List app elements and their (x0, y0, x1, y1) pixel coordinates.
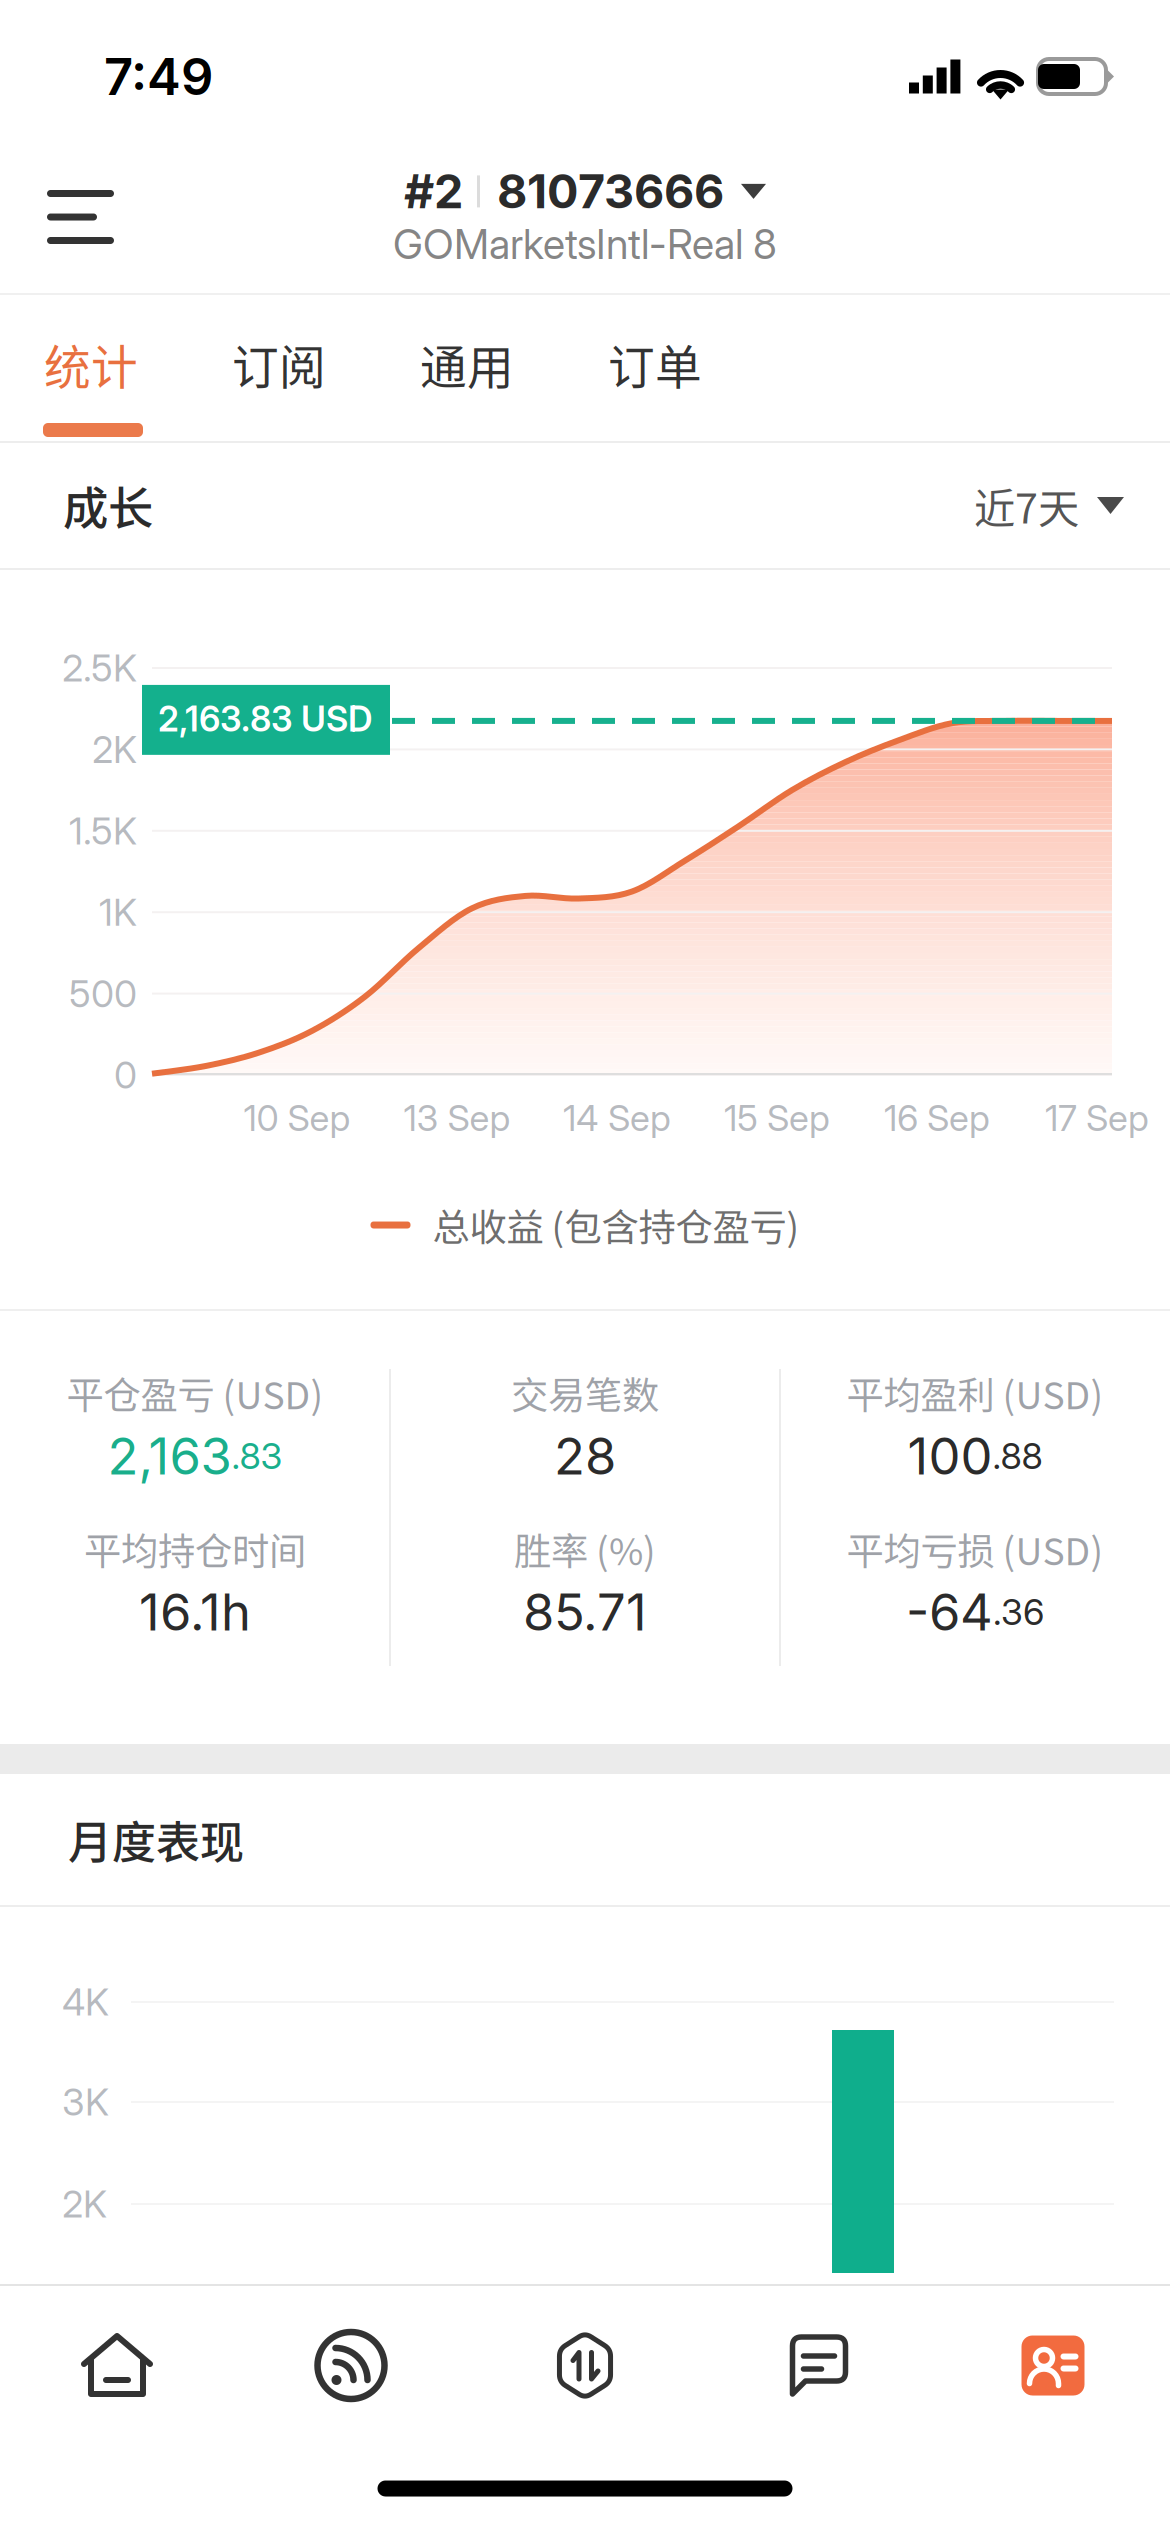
staticText: 订阅 (232, 330, 326, 398)
staticText: 4K (62, 1979, 109, 2025)
staticText: 近7天 (974, 476, 1079, 535)
staticText: 7:49 (104, 46, 213, 107)
staticText: 100 (907, 1425, 992, 1487)
staticText: 15 Sep (724, 1096, 830, 1140)
button[interactable]: 通用 (415, 295, 603, 441)
staticText: 2.5K (62, 645, 137, 691)
staticText: .83 (231, 1434, 282, 1478)
staticText: -64 (906, 1581, 993, 1643)
button[interactable]: Profile (936, 2286, 1170, 2445)
staticText: 81073666 (497, 163, 724, 220)
staticText: 10 Sep (243, 1096, 350, 1140)
button[interactable]: Trade (468, 2286, 702, 2445)
staticText: 17 Sep (1045, 1096, 1149, 1140)
staticText: 平均亏损 (USD) (846, 1522, 1103, 1576)
staticText: 平仓盈亏 (USD) (66, 1366, 323, 1420)
staticText: 16.1h (139, 1581, 251, 1643)
staticText: 500 (69, 971, 137, 1016)
staticText: 16 Sep (884, 1096, 990, 1140)
staticText: 交易笔数 (511, 1366, 659, 1420)
staticText: 订单 (608, 330, 702, 398)
button[interactable]: 近7天 (944, 460, 1124, 551)
staticText: 3K (62, 2079, 109, 2125)
button[interactable]: 统计 (39, 295, 227, 441)
staticText: 月度表现 (68, 1808, 244, 1871)
button[interactable]: 订阅 (227, 295, 415, 441)
staticText: .36 (993, 1590, 1044, 1634)
staticText: 2,163 (107, 1425, 231, 1487)
staticText: 平均持仓时间 (84, 1522, 306, 1576)
staticText: 统计 (44, 330, 138, 398)
staticText: 2,163.83 USD (158, 698, 372, 740)
staticText: 13 Sep (403, 1096, 510, 1140)
staticText: 成长 (63, 473, 153, 538)
staticText: 2K (92, 727, 137, 772)
button[interactable]: 订单 (603, 295, 791, 441)
staticText: 1K (99, 890, 137, 935)
button[interactable]: Home (0, 2286, 234, 2445)
staticText: GOMarketsIntl-Real 8 (393, 220, 777, 269)
staticText: 0 (114, 1052, 137, 1098)
button[interactable]: Messages (702, 2286, 936, 2445)
staticText: #2 (404, 163, 463, 220)
staticText: 14 Sep (563, 1096, 671, 1140)
staticText: 胜率 (%) (514, 1522, 656, 1576)
staticText: 28 (554, 1425, 616, 1487)
button[interactable]: Signals (234, 2286, 468, 2445)
staticText: 85.71 (523, 1581, 647, 1643)
staticText: 通用 (420, 330, 514, 398)
staticText: 平均盈利 (USD) (846, 1366, 1103, 1420)
staticText: 总收益 (包含持仓盈亏) (432, 1198, 799, 1252)
button[interactable]: Menu (0, 166, 144, 280)
staticText: 1.5K (69, 808, 137, 853)
staticText: 2K (62, 2181, 107, 2227)
staticText: .88 (992, 1434, 1042, 1478)
